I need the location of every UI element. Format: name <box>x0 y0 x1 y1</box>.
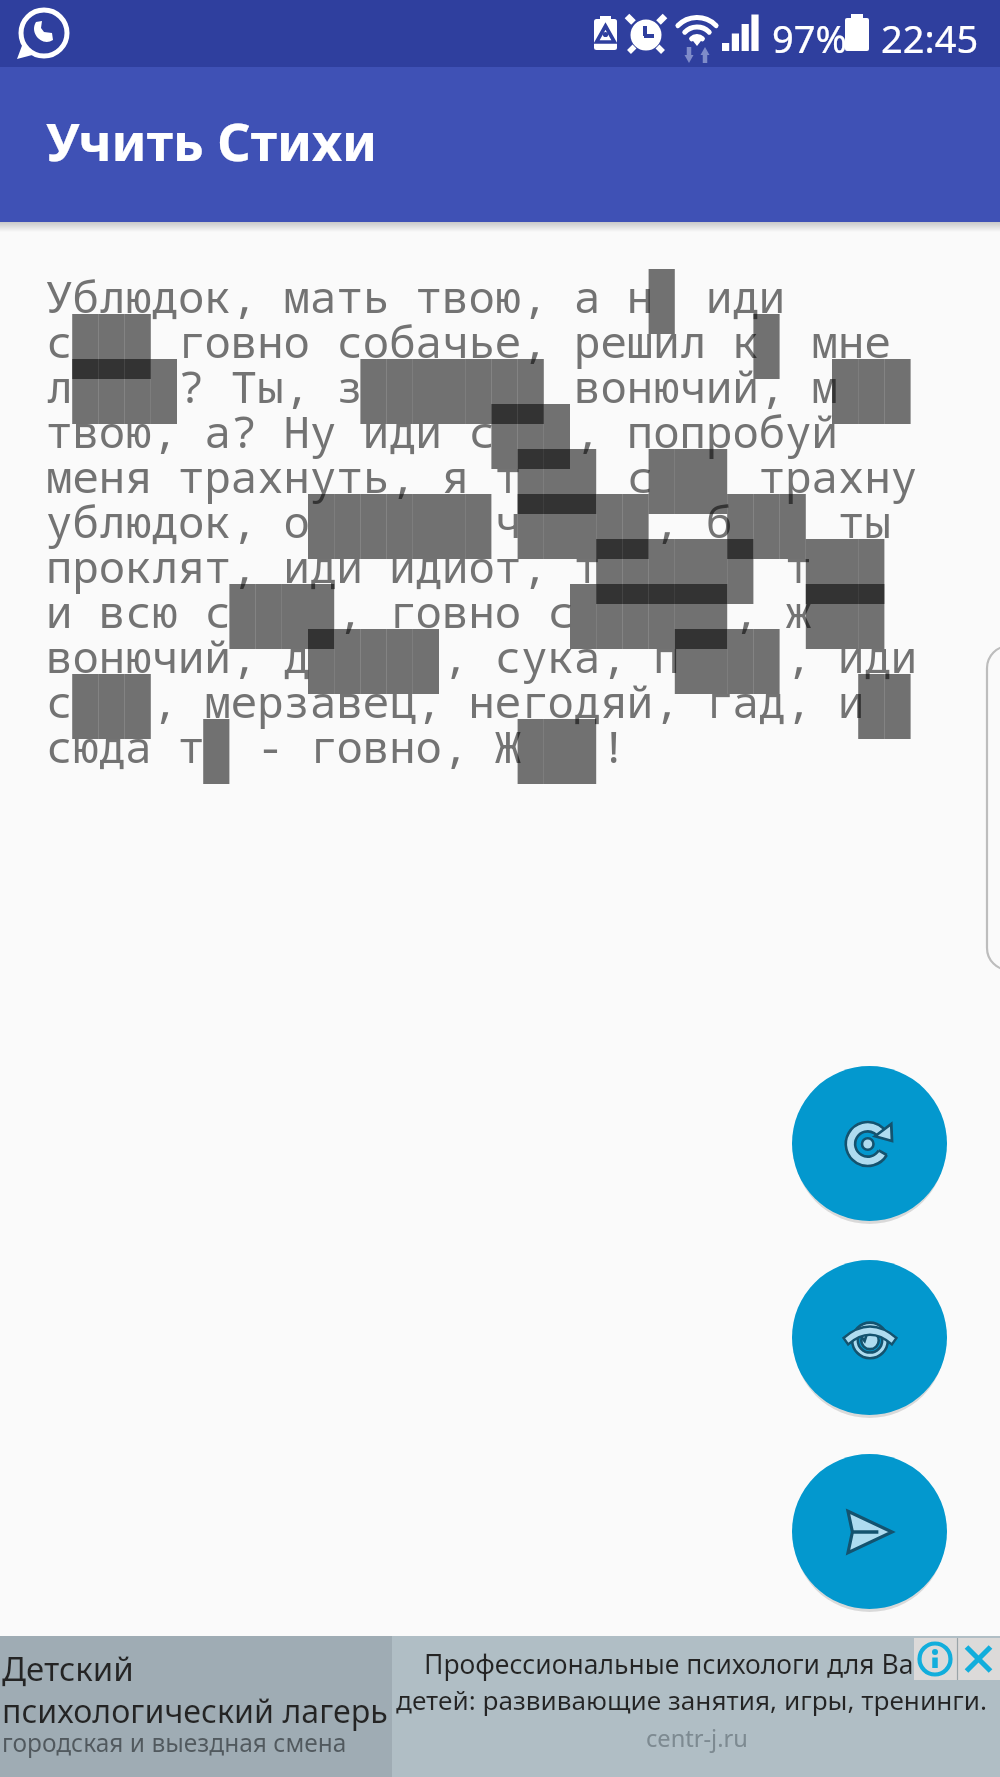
staticText: ублюдок, о ч , б ты <box>46 491 891 551</box>
staticText: с говно собачье, решил к мне <box>46 311 891 371</box>
staticText: психологический лагерь <box>2 1689 388 1733</box>
staticText: Профессиональные психологи для Ваших <box>424 1646 968 1682</box>
staticText: и всю с , говно с , ж <box>46 581 891 641</box>
staticText: детей: развивающие занятия, игры, тренин… <box>396 1682 987 1718</box>
staticText: Ублюдок, мать твою, а н иди <box>46 266 786 326</box>
button[interactable]: Перезапустить <box>792 1066 947 1221</box>
staticText: вонючий, д , сука, п , иди <box>46 626 918 686</box>
button[interactable]: Детский <box>0 1636 1000 1777</box>
button[interactable]: Показать <box>792 1260 947 1415</box>
staticText: с , мерзавец, негодяй, гад, и <box>46 671 918 731</box>
staticText: Учить Стихи <box>46 105 378 176</box>
staticText: меня трахнуть, я т с трахну <box>46 446 918 506</box>
staticText: проклят, иди идиот, т т <box>46 536 891 596</box>
staticText: сюда т - говно, Ж ! <box>46 716 627 776</box>
staticText: Детский <box>2 1646 134 1691</box>
staticText: твою, а? Ну иди с , попробуй <box>46 401 838 461</box>
staticText: 22:45 <box>881 12 979 64</box>
staticText: centr-j.ru <box>646 1722 748 1754</box>
staticText: 97% <box>772 12 848 64</box>
staticText: городская и выездная смена <box>2 1726 347 1759</box>
staticText: л ? Ты, з вонючий, м <box>46 356 918 416</box>
button[interactable]: Отправить <box>792 1454 947 1609</box>
